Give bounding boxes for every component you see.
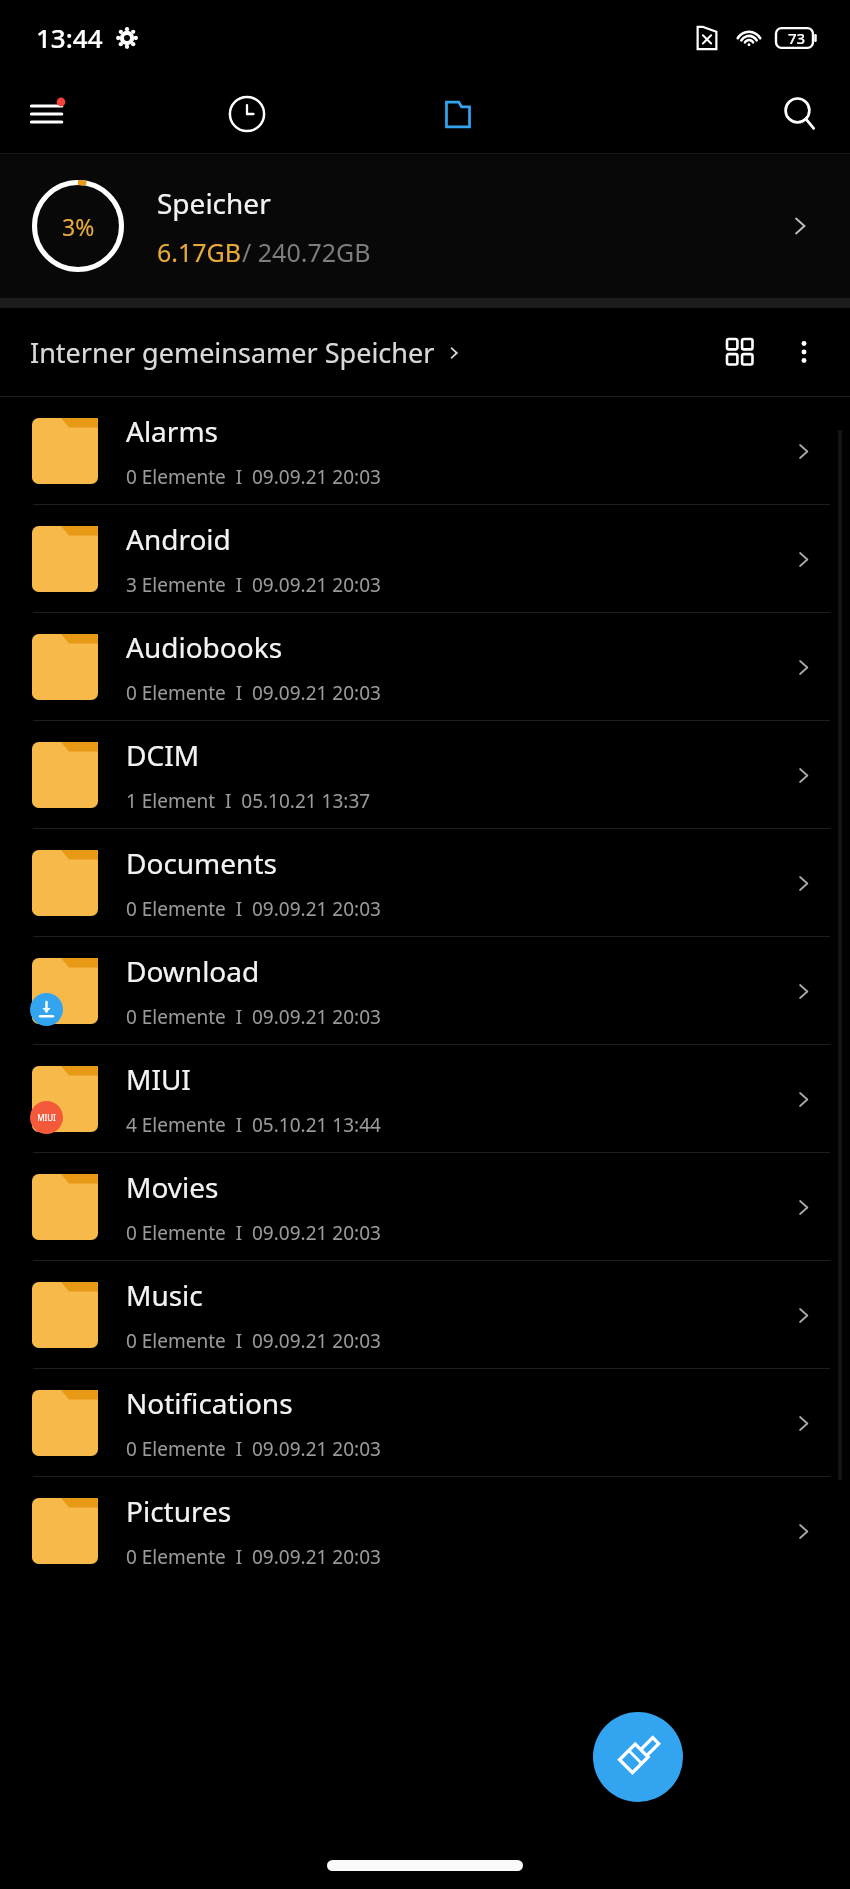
button[interactable]: Pictures [0,1477,850,1584]
button[interactable]: MIUI [0,1045,850,1152]
button[interactable]: Interner gemeinsamer Speicher [30,334,465,371]
staticText: Download [126,952,260,990]
staticText: 0 Elemente I 09.09.21 20:03 [126,896,381,922]
staticText: 3 Elemente I 09.09.21 20:03 [126,572,381,598]
button[interactable]: Download [0,937,850,1044]
button[interactable]: Music [0,1261,850,1368]
button[interactable]: Recent [215,82,279,146]
staticText: 6.17GB [157,235,242,269]
staticText: 73 [788,28,806,48]
staticText: Music [126,1276,203,1314]
button[interactable]: Android [0,505,850,612]
staticText: Documents [126,844,277,882]
staticText: Interner gemeinsamer Speicher [30,334,435,371]
staticText: Notifications [126,1384,293,1422]
button[interactable]: Documents [0,829,850,936]
button[interactable]: Audiobooks [0,613,850,720]
staticText: DCIM [126,736,200,774]
button[interactable]: 3% [0,154,850,298]
staticText: 13:44 [36,20,103,55]
button[interactable]: Grid view [708,320,772,384]
staticText: 0 Elemente I 09.09.21 20:03 [126,1328,381,1354]
button[interactable]: Alarms [0,397,850,504]
staticText: Pictures [126,1492,232,1530]
button[interactable]: DCIM [0,721,850,828]
staticText: 0 Elemente I 09.09.21 20:03 [126,464,381,490]
staticText: MIUI [37,1112,56,1123]
staticText: Movies [126,1168,219,1206]
staticText: 0 Elemente I 09.09.21 20:03 [126,680,381,706]
button[interactable]: Menu [18,83,80,145]
staticText: Speicher [157,184,271,222]
button[interactable]: More options [772,320,836,384]
button[interactable]: Movies [0,1153,850,1260]
button[interactable]: Clean up storage [593,1712,683,1802]
staticText: 0 Elemente I 09.09.21 20:03 [126,1004,381,1030]
staticText: Android [126,520,231,558]
button[interactable]: Search [768,82,832,146]
staticText: / 240.72GB [242,235,371,269]
staticText: Audiobooks [126,628,283,666]
staticText: 1 Element I 05.10.21 13:37 [126,788,371,814]
button[interactable]: Files [426,82,490,146]
staticText: Alarms [126,412,218,450]
button[interactable]: Notifications [0,1369,850,1476]
staticText: 3% [62,211,95,242]
staticText: 0 Elemente I 09.09.21 20:03 [126,1220,381,1246]
staticText: 0 Elemente I 09.09.21 20:03 [126,1436,381,1462]
staticText: 4 Elemente I 05.10.21 13:44 [126,1112,381,1138]
staticText: 0 Elemente I 09.09.21 20:03 [126,1544,381,1570]
staticText: MIUI [126,1060,191,1098]
